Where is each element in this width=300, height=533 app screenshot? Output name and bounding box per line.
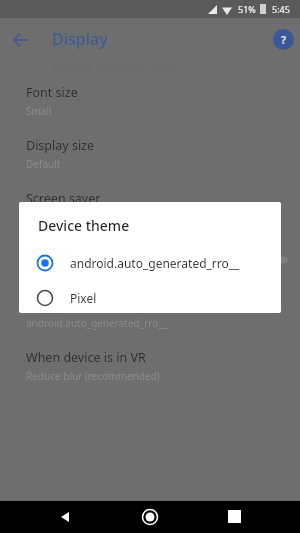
button[interactable]: When device is in VR <box>0 339 300 392</box>
staticText: Font size <box>26 84 78 101</box>
staticText: Ambient display <box>26 243 121 260</box>
button[interactable]: Help <box>273 29 294 50</box>
staticText: android.auto_generated_rro__ <box>70 255 240 271</box>
button[interactable]: Screen saver <box>0 180 300 233</box>
staticText: 5:45 <box>272 3 290 15</box>
staticText: Device theme <box>38 216 130 235</box>
staticText: Wake screen when you receive notificatio… <box>26 263 231 277</box>
button[interactable]: Display size <box>0 127 300 180</box>
staticText: Device theme <box>26 296 106 313</box>
staticText: Pixel <box>70 290 97 306</box>
staticText: Off <box>26 210 41 224</box>
button[interactable]: android.auto_generated_rro__ <box>19 246 281 279</box>
staticText: Display size <box>26 137 95 154</box>
staticText: ? <box>281 32 287 47</box>
staticText: Reduce blur (recommended) <box>26 369 160 383</box>
staticText: Default <box>26 157 61 171</box>
staticText: Display <box>52 28 108 50</box>
staticText: When device is in VR <box>26 349 146 366</box>
button[interactable]: Back <box>10 29 32 51</box>
staticText: 51% <box>238 3 256 15</box>
button[interactable]: Back <box>57 509 73 525</box>
button[interactable]: Home <box>142 509 158 525</box>
staticText: Small <box>26 104 52 118</box>
staticText: Screen saver <box>26 190 101 207</box>
button[interactable]: Ambient display <box>0 233 300 286</box>
button[interactable]: Device theme <box>0 286 300 339</box>
button[interactable]: Font size <box>0 74 300 127</box>
staticText: android.auto_generated_rro__ <box>26 316 168 330</box>
button[interactable]: Pixel <box>19 281 281 313</box>
